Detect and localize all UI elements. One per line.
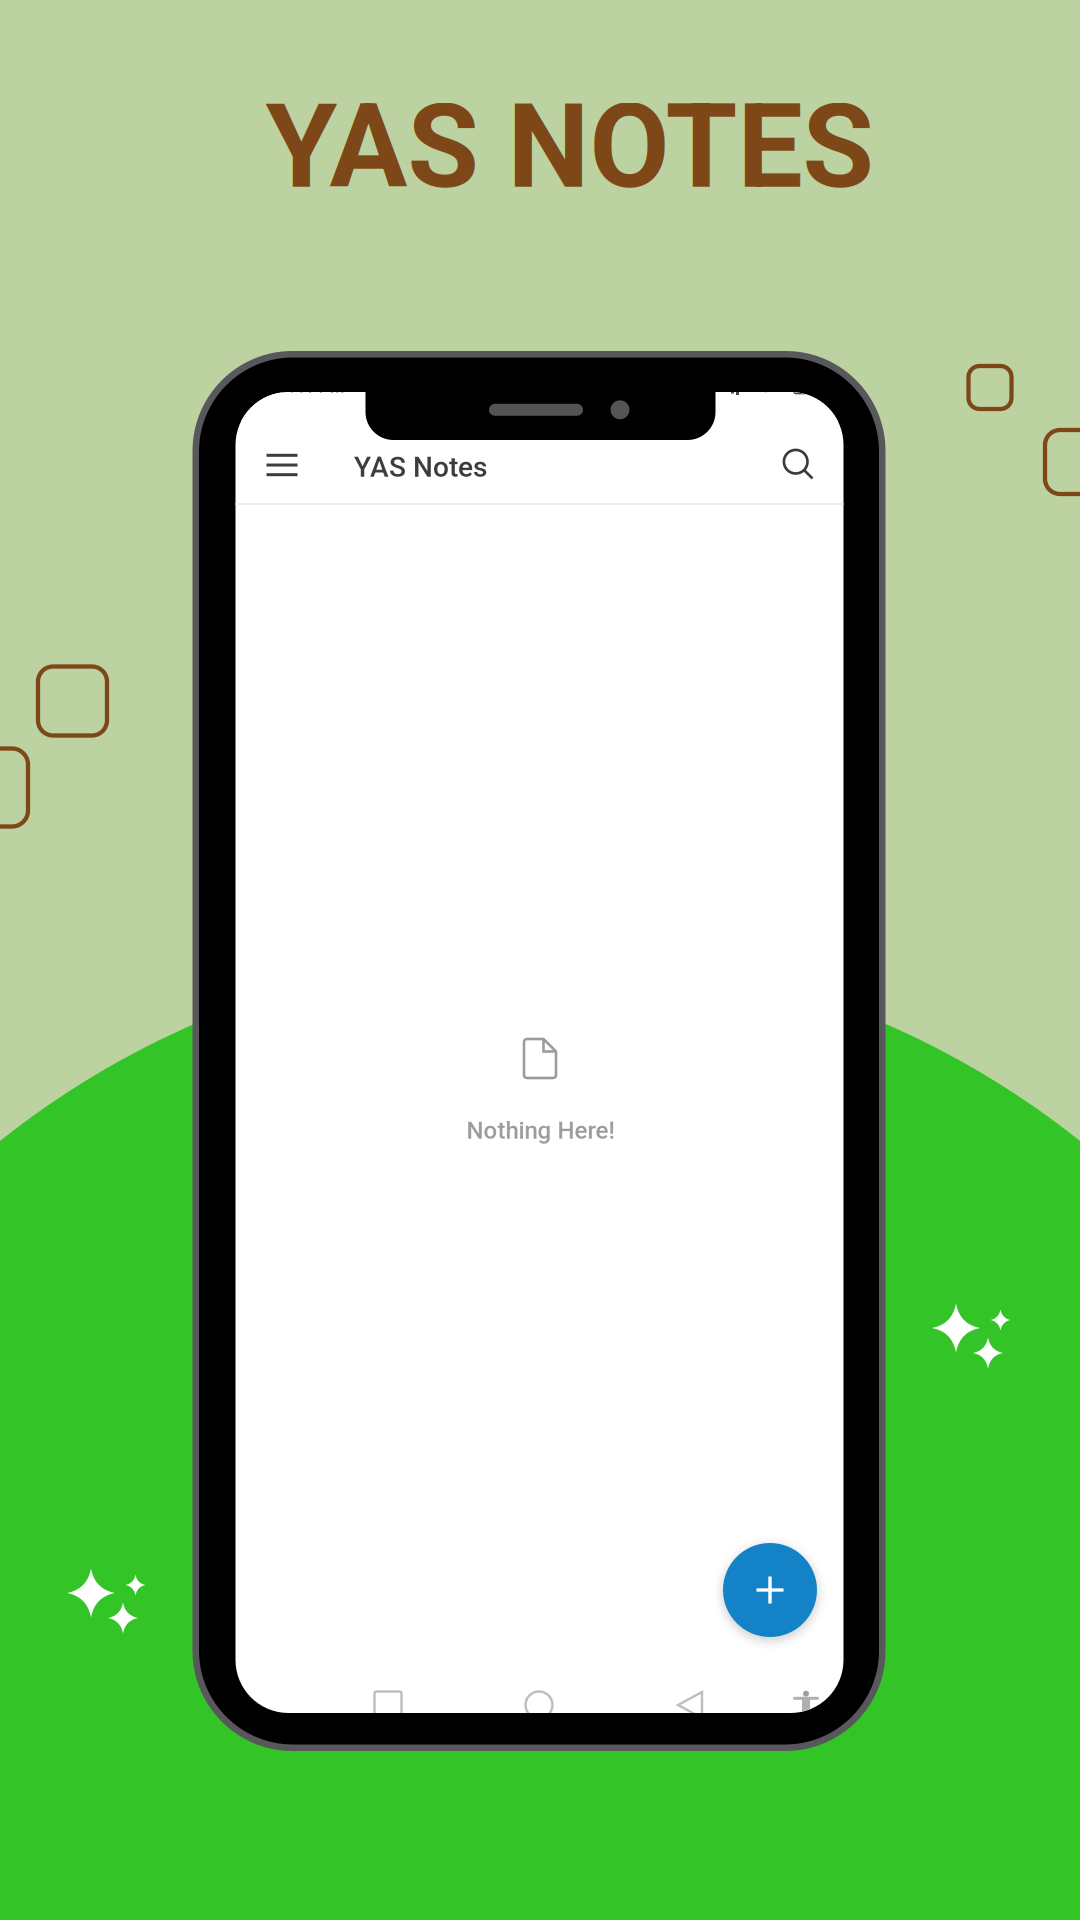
button[interactable]: Menu xyxy=(253,436,311,494)
staticText: YAS NOTES xyxy=(265,79,873,215)
button[interactable]: New note xyxy=(723,1543,817,1637)
staticText: Nothing Here! xyxy=(466,1116,614,1144)
button[interactable]: Search xyxy=(768,434,826,492)
staticText: YAS Notes xyxy=(354,451,487,483)
staticText: 9:41 PM xyxy=(279,376,344,397)
staticText: K/S xyxy=(757,379,779,395)
